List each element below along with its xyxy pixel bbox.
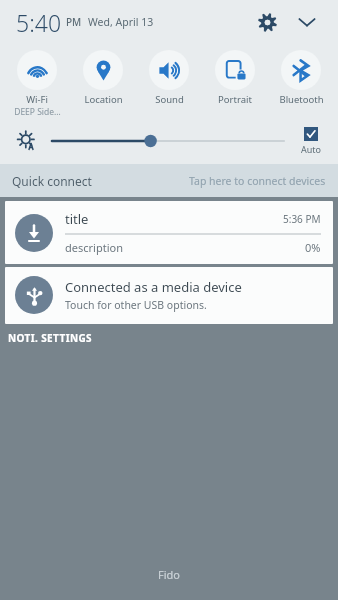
button[interactable]: Quick connect [0,164,338,197]
staticText: Bluetooth [279,93,324,106]
staticText: Fido [0,567,338,582]
button[interactable]: Bluetooth [268,46,334,106]
button[interactable]: Sound [136,46,202,106]
staticText: 0% [305,240,321,255]
staticText: Quick connect [12,173,92,189]
staticText: 5:36 PM [283,212,321,226]
staticText: Wi-Fi [26,93,48,106]
button[interactable]: Collapse [290,5,324,39]
button[interactable]: Settings [250,5,284,39]
staticText: title [65,210,283,228]
staticText: Connected as a media device [65,278,242,296]
staticText: NOTI. SETTINGS [8,331,93,345]
staticText: Touch for other USB options. [65,298,207,312]
staticText: description [65,240,305,255]
button[interactable]: Wi-Fi [4,46,70,118]
staticText: Tap here to connect devices [189,174,326,188]
staticText: Sound [155,93,184,106]
staticText: Location [84,93,123,106]
staticText: 5:40 [16,7,62,38]
button[interactable]: Portrait [202,46,268,106]
staticText: Wed, April 13 [88,15,154,29]
staticText: DEEP Side… [14,106,61,118]
staticText: Portrait [218,93,252,106]
button[interactable]: title [5,201,333,264]
button[interactable]: Auto [294,127,328,155]
button[interactable]: Auto brightness [14,128,40,154]
button[interactable] [52,128,284,154]
button[interactable]: Connected as a media device [5,267,333,324]
staticText: PM [66,15,82,29]
staticText: Auto [301,143,322,155]
button[interactable]: Location [70,46,136,106]
